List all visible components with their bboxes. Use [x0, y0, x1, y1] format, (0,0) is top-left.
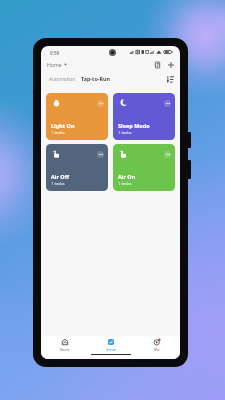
staticText: 1 tasks [118, 181, 132, 187]
button[interactable]: Sort [165, 74, 176, 85]
button[interactable]: Me [134, 336, 180, 352]
staticText: Air Off [51, 173, 69, 180]
staticText: Scene [106, 347, 116, 352]
button[interactable]: Scene [88, 336, 134, 352]
staticText: Me [154, 347, 160, 352]
button[interactable]: Tap-to-Run [81, 75, 111, 82]
button[interactable]: More options [113, 93, 175, 140]
staticText: Home [59, 347, 70, 352]
button[interactable]: Add [164, 58, 177, 71]
staticText: Sleep Mode [118, 122, 150, 129]
button[interactable]: Scenes list [151, 58, 164, 71]
button[interactable]: Automation [49, 76, 76, 82]
staticText: 1 tasks [118, 130, 132, 136]
staticText: 1 tasks [51, 130, 65, 136]
staticText: 1 tasks [51, 181, 65, 187]
button[interactable]: More options [113, 144, 175, 191]
staticText: 9:59 [50, 50, 60, 56]
button[interactable]: More options [46, 93, 108, 140]
button[interactable]: More options [164, 100, 171, 107]
staticText: Air On [118, 173, 136, 180]
staticText: Tap-to-Run [81, 75, 111, 82]
button[interactable]: Home [41, 336, 88, 352]
button[interactable]: More options [97, 151, 104, 158]
button[interactable]: More options [46, 144, 108, 191]
button[interactable]: Home [47, 61, 67, 68]
staticText: Home [47, 61, 62, 68]
staticText: Automation [49, 76, 76, 82]
staticText: Light On [51, 122, 75, 129]
button[interactable]: More options [97, 100, 104, 107]
button[interactable]: More options [164, 151, 171, 158]
